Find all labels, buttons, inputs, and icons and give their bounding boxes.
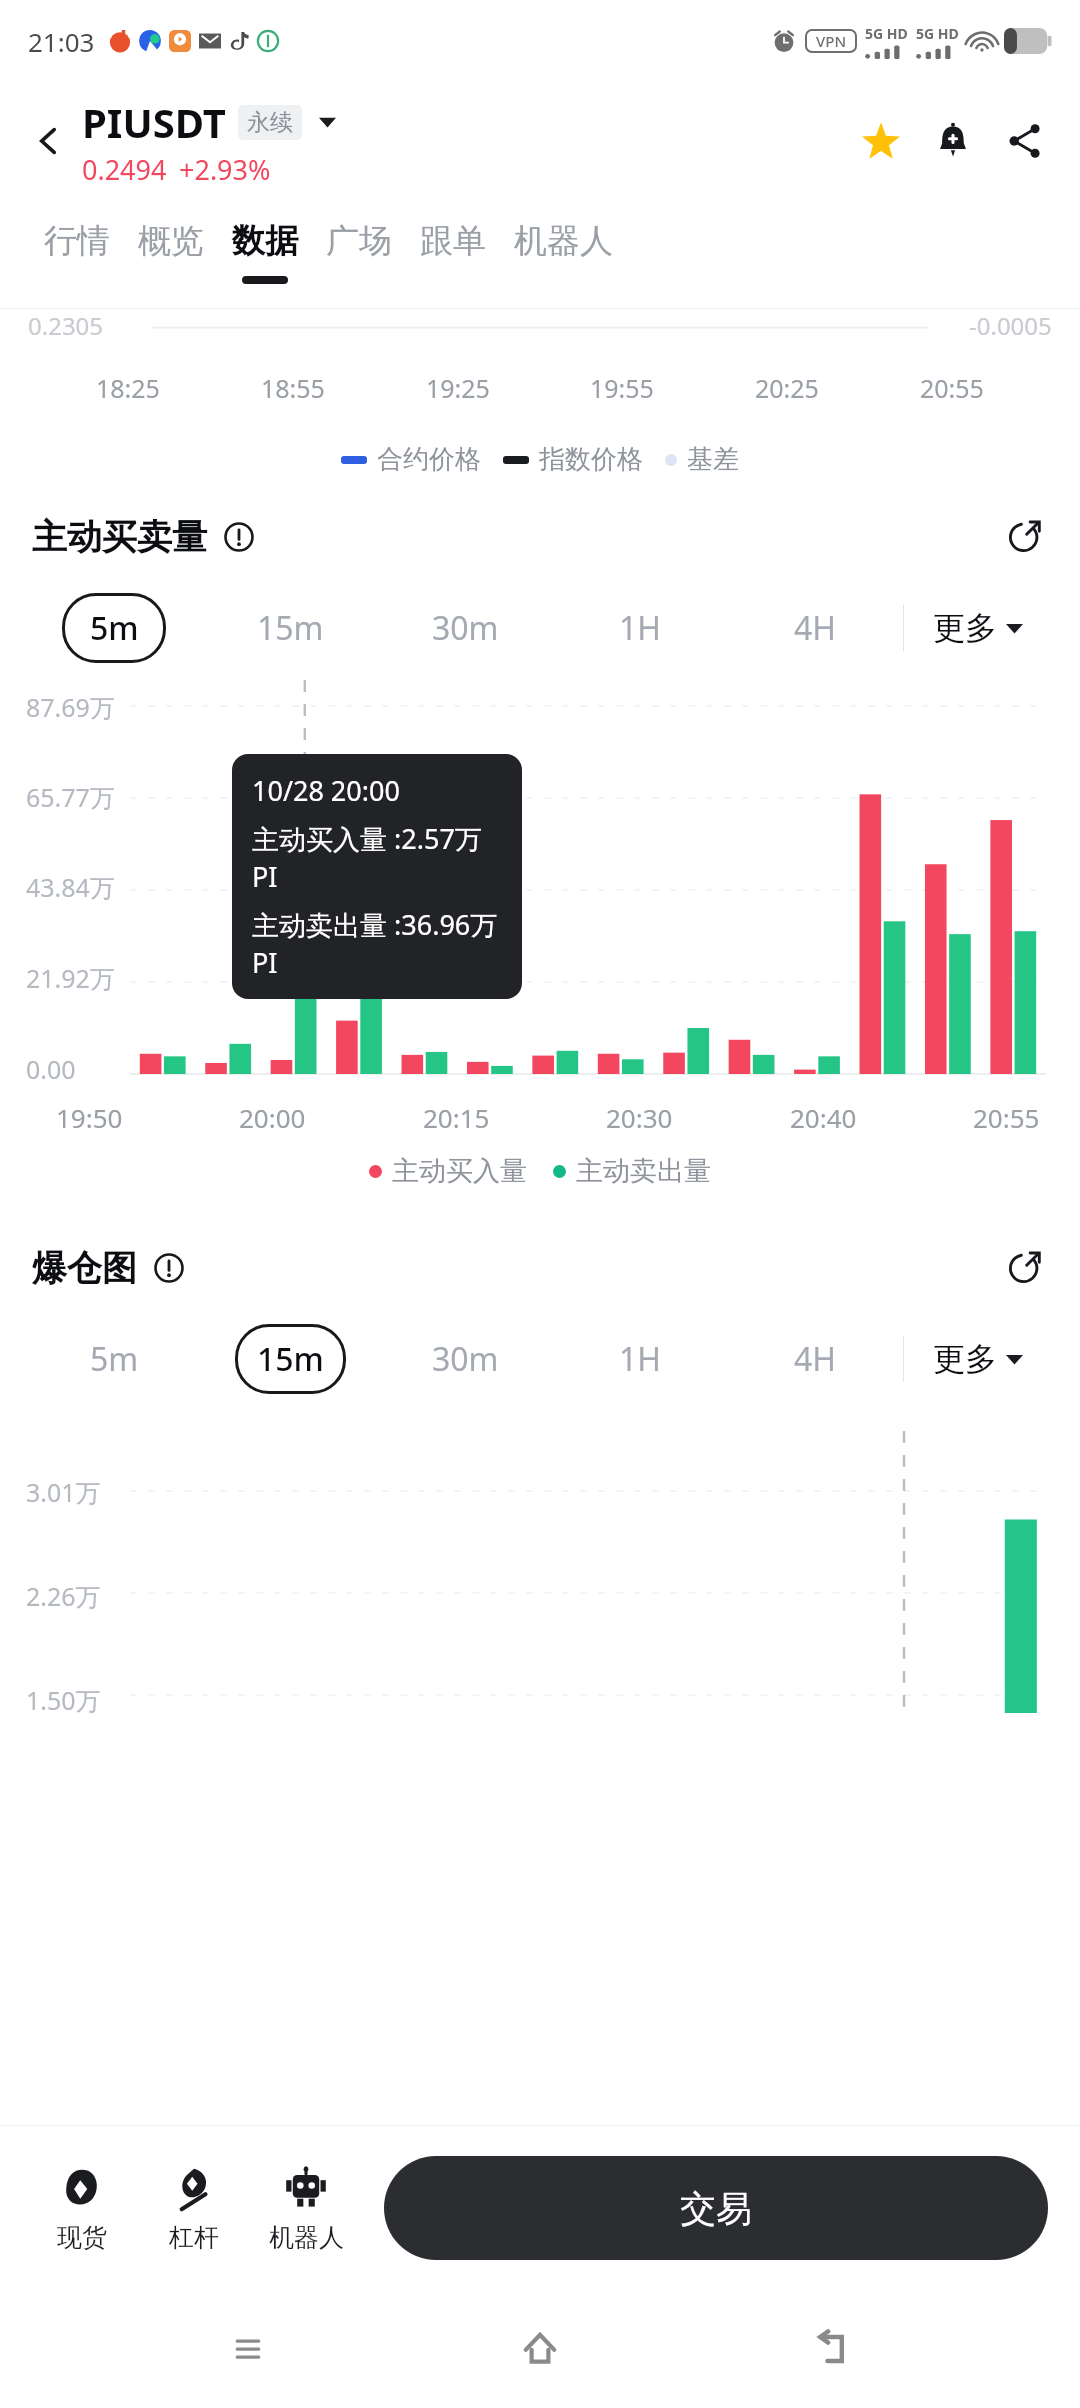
button[interactable]: 4H [728, 1324, 903, 1394]
staticText: PIUSDT [82, 95, 226, 149]
button[interactable]: 5m [26, 593, 202, 663]
staticText: 行情 [44, 220, 110, 262]
button[interactable]: 4H [728, 593, 903, 663]
staticText: 合约价格 [377, 443, 481, 476]
staticText: 主动卖出量 [576, 1154, 711, 1188]
staticText: 机器人 [269, 2222, 344, 2253]
staticText: 20:55 [973, 1100, 1040, 1135]
staticText: 65.77万 [26, 780, 115, 814]
button[interactable]: Back [22, 114, 76, 168]
staticText: 18:55 [261, 371, 325, 405]
staticText: 43.84万 [26, 870, 115, 904]
button[interactable]: Expand chart [1000, 513, 1048, 561]
button[interactable]: Info [221, 519, 257, 555]
staticText: 20:55 [920, 371, 984, 405]
staticText: 跟单 [420, 220, 486, 262]
staticText: 主动买入量 :2.57万 PI [252, 820, 502, 895]
button[interactable]: Back [788, 2304, 878, 2394]
staticText: 30m [432, 606, 499, 650]
staticText: 基差 [687, 443, 739, 476]
staticText: -0.0005 [969, 309, 1052, 342]
button[interactable]: 行情 [30, 200, 124, 276]
button[interactable]: 更多 [904, 593, 1052, 663]
button[interactable]: Alerts [924, 112, 982, 170]
staticText: 杠杆 [169, 2222, 219, 2253]
staticText: 5m [90, 1337, 139, 1381]
staticText: 4H [794, 1337, 837, 1381]
staticText: 数据 [232, 220, 298, 262]
staticText: 15m [257, 606, 324, 650]
button[interactable]: Expand chart [1000, 1244, 1048, 1292]
staticText: 20:15 [423, 1100, 490, 1135]
staticText: 18:25 [96, 371, 160, 405]
staticText: 5G HD [916, 24, 959, 43]
button[interactable]: 机器人 [250, 2158, 362, 2259]
button[interactable]: 15m [202, 593, 378, 663]
staticText: +2.93% [179, 151, 271, 188]
button[interactable]: 永续 [238, 105, 302, 140]
button[interactable]: 5m [26, 1324, 202, 1394]
button[interactable]: 广场 [312, 200, 406, 276]
staticText: 10/28 20:00 [252, 772, 400, 809]
button[interactable]: Select contract [312, 107, 342, 137]
button[interactable]: 机器人 [500, 200, 627, 276]
staticText: 5m [90, 606, 139, 650]
staticText: 3.01万 [26, 1475, 101, 1509]
staticText: 主动买入量 [392, 1154, 527, 1188]
staticText: 19:25 [426, 371, 490, 405]
staticText: 21:03 [28, 24, 95, 59]
staticText: 5G HD [865, 24, 908, 43]
staticText: 20:30 [606, 1100, 673, 1135]
staticText: 1H [619, 606, 662, 650]
button[interactable]: 杠杆 [138, 2158, 250, 2259]
staticText: VPN [816, 31, 847, 51]
staticText: 指数价格 [539, 443, 643, 476]
staticText: 主动卖出量 :36.96万 PI [252, 906, 502, 981]
staticText: 交易 [680, 2186, 752, 2231]
staticText: 广场 [326, 220, 392, 262]
staticText: 更多 [933, 1339, 997, 1379]
staticText: 20:40 [790, 1100, 857, 1135]
staticText: 21.92万 [26, 961, 115, 995]
button[interactable]: 概览 [124, 200, 218, 276]
staticText: 概览 [138, 220, 204, 262]
staticText: 主动买卖量 [32, 515, 207, 559]
staticText: 19:55 [590, 371, 654, 405]
staticText: 永续 [247, 108, 293, 137]
button[interactable]: Home [495, 2304, 585, 2394]
staticText: 1.50万 [26, 1683, 101, 1713]
staticText: 2.26万 [26, 1579, 101, 1613]
staticText: 现货 [57, 2222, 107, 2253]
button[interactable]: Recents [203, 2304, 293, 2394]
staticText: 0.2305 [28, 309, 104, 342]
button[interactable]: 交易 [384, 2156, 1048, 2260]
staticText: 87.69万 [26, 690, 115, 724]
button[interactable]: Favorite [852, 112, 910, 170]
staticText: 0.2494 [82, 151, 167, 188]
staticText: 20:25 [755, 371, 819, 405]
staticText: 4H [794, 606, 837, 650]
staticText: 30m [432, 1337, 499, 1381]
button[interactable]: 更多 [904, 1324, 1052, 1394]
staticText: 爆仓图 [32, 1246, 137, 1290]
staticText: 机器人 [514, 220, 613, 262]
staticText: 0.00 [26, 1052, 76, 1086]
button[interactable]: 1H [553, 593, 728, 663]
button[interactable]: 跟单 [406, 200, 500, 276]
button[interactable]: 1H [553, 1324, 728, 1394]
button[interactable]: 30m [378, 1324, 553, 1394]
button[interactable]: Share [996, 112, 1054, 170]
button[interactable]: 15m [202, 1324, 378, 1394]
staticText: 1H [619, 1337, 662, 1381]
button[interactable]: Info [151, 1250, 187, 1286]
button[interactable]: 现货 [26, 2158, 138, 2259]
staticText: 19:50 [56, 1100, 123, 1135]
staticText: 15m [257, 1337, 324, 1381]
staticText: 20:00 [239, 1100, 306, 1135]
staticText: 更多 [933, 608, 997, 648]
button[interactable]: 30m [378, 593, 553, 663]
button[interactable]: 数据 [218, 200, 312, 284]
